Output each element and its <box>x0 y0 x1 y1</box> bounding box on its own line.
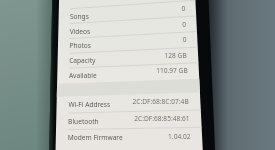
button[interactable]: Phone showing About settings <box>0 0 275 150</box>
